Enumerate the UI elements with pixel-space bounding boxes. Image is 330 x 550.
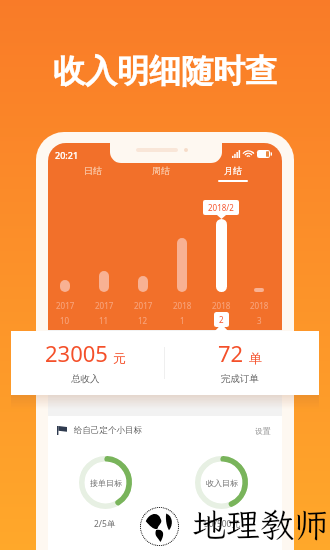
staticText: 2017 — [56, 300, 75, 311]
staticText: 设置 — [255, 426, 271, 436]
staticText: 2017 — [95, 300, 114, 311]
button[interactable]: 设置 — [255, 426, 271, 436]
staticText: 2018/2 — [208, 202, 234, 213]
button[interactable]: 72 — [170, 331, 310, 395]
button[interactable]: 周结 — [137, 165, 185, 182]
staticText: 12 — [138, 315, 148, 326]
staticText: 20:21 — [55, 149, 79, 161]
staticText: 完成订单 — [221, 373, 259, 385]
staticText: 1 — [180, 315, 185, 326]
staticText: 地理教师 — [192, 502, 328, 547]
button[interactable]: 日结 — [69, 165, 117, 182]
staticText: 2018 — [250, 300, 269, 311]
staticText: 10 — [60, 315, 70, 326]
staticText: 给自己定个小目标 — [74, 425, 142, 436]
button[interactable]: 23005 — [15, 331, 155, 395]
other: Goal — [57, 426, 67, 435]
staticText: 日结 — [84, 165, 102, 176]
staticText: 月结 — [224, 165, 242, 176]
staticText: 单 — [249, 350, 262, 366]
staticText: 接单目标 — [90, 478, 122, 488]
staticText: 50/500元 — [204, 518, 240, 530]
staticText: 2/5单 — [94, 518, 116, 530]
staticText: 周结 — [152, 165, 170, 176]
staticText: 收入明细随时查 — [0, 51, 330, 91]
staticText: 2017 — [134, 300, 153, 311]
button[interactable]: Goal — [57, 425, 142, 436]
button[interactable]: 月结 — [209, 165, 257, 182]
staticText: 23005 — [45, 338, 108, 368]
staticText: 2018 — [212, 300, 231, 311]
staticText: 11 — [99, 315, 109, 326]
staticText: 2 — [219, 314, 224, 325]
staticText: 2018 — [173, 300, 192, 311]
button[interactable]: 收入目标 — [195, 456, 248, 509]
staticText: 总收入 — [71, 373, 100, 385]
button[interactable]: 接单目标 — [79, 456, 132, 509]
staticText: 收入目标 — [206, 478, 238, 488]
staticText: 72 — [218, 338, 244, 368]
staticText: 3 — [257, 315, 262, 326]
staticText: 元 — [113, 350, 126, 366]
